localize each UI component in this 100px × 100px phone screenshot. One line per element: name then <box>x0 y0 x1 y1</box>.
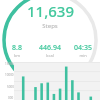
staticText: Steps <box>42 22 58 30</box>
button[interactable]: 446.94 <box>32 43 68 58</box>
staticText: kcal <box>46 53 54 58</box>
button[interactable]: 8.8 <box>2 43 32 58</box>
staticText: 11,639 <box>27 1 74 21</box>
staticText: 446.94 <box>39 43 61 53</box>
staticText: km <box>14 53 20 58</box>
staticText: min <box>79 53 87 58</box>
staticText: 15000 <box>5 62 14 66</box>
button[interactable]: 04:35 <box>68 43 98 58</box>
button[interactable]: 11,639 <box>0 1 100 30</box>
staticText: 8.8 <box>12 43 22 53</box>
staticText: 04:35 <box>74 43 92 53</box>
staticText: 5000 <box>7 85 14 89</box>
staticText: 000 <box>8 96 14 100</box>
button[interactable]: Weekly step chart <box>0 62 100 100</box>
staticText: 10000 <box>5 73 14 77</box>
